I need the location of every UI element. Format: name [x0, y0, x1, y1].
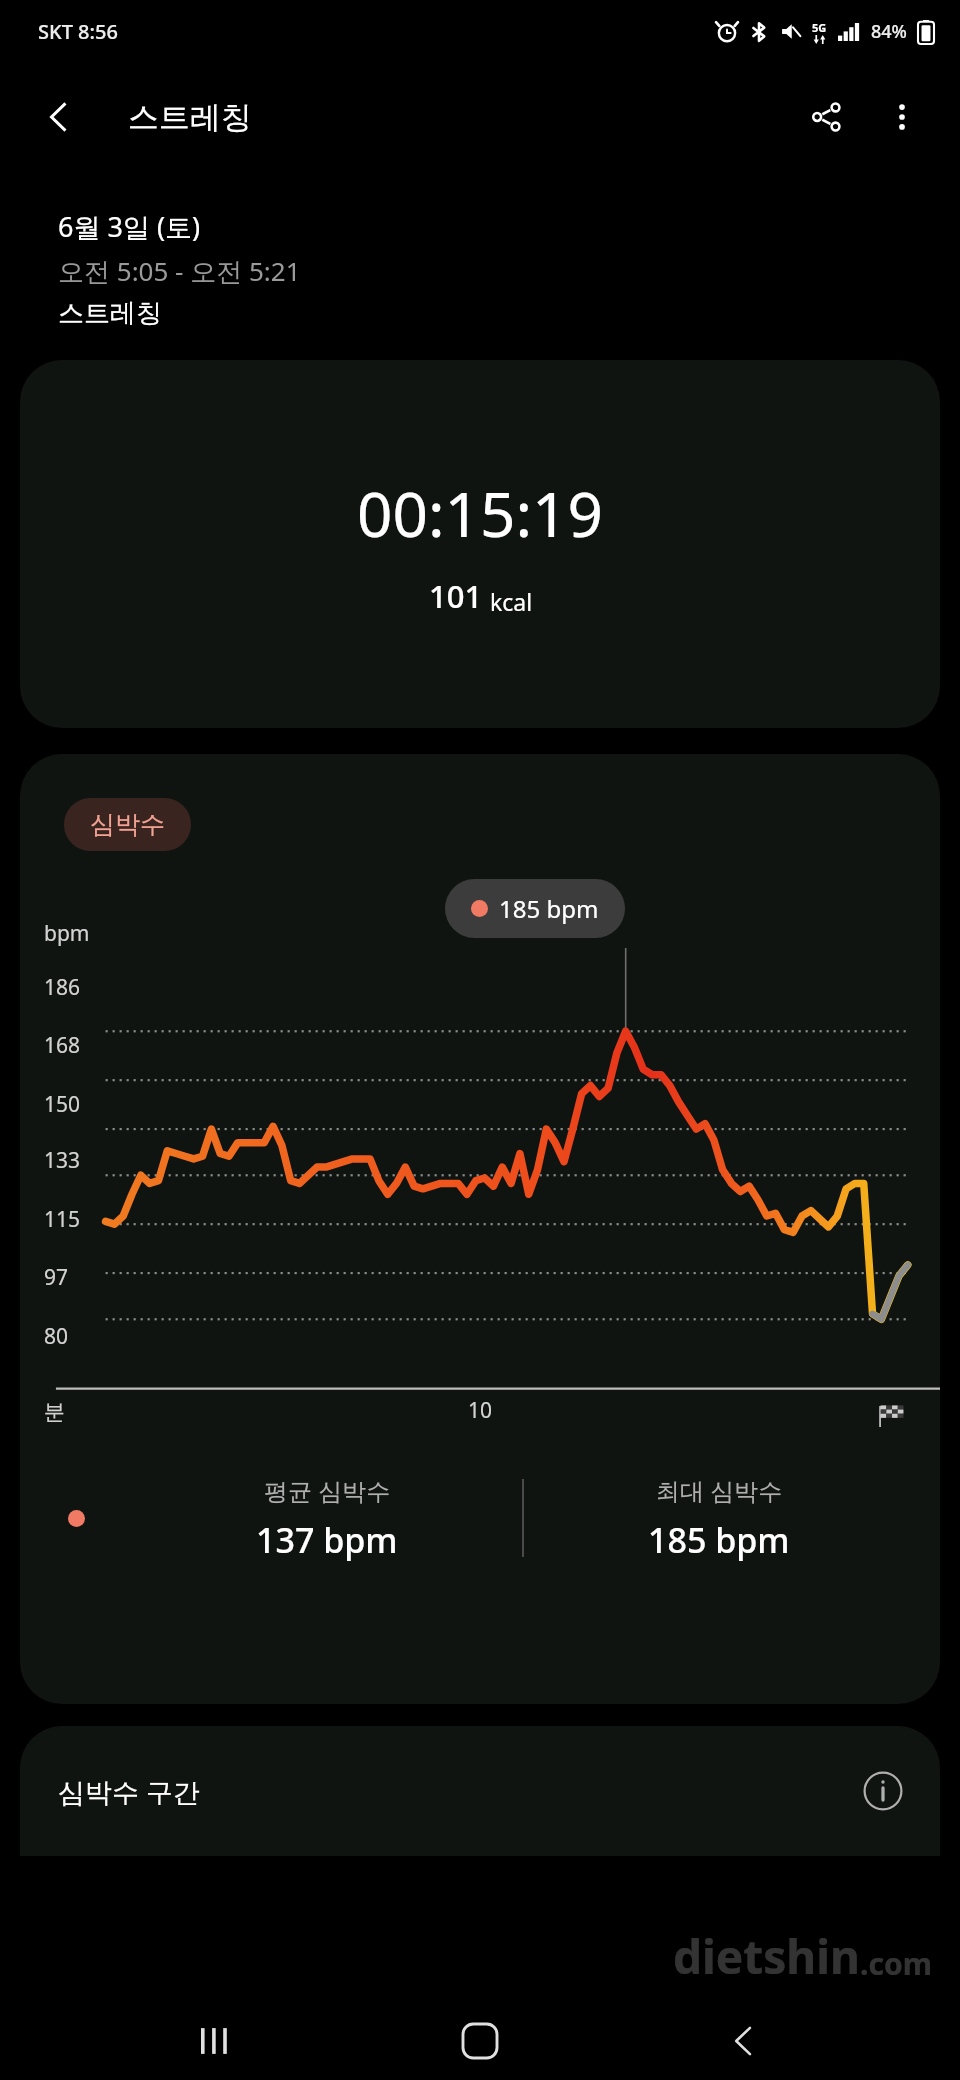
- button[interactable]: Home: [432, 2002, 528, 2080]
- staticText: 심박수 구간: [58, 1773, 201, 1810]
- staticText: .com: [860, 1943, 932, 1984]
- staticText: 00:15:19: [357, 471, 604, 555]
- staticText: 101: [429, 575, 483, 617]
- button[interactable]: Share: [788, 79, 864, 155]
- button[interactable]: Recents: [168, 2002, 264, 2080]
- button[interactable]: Back: [696, 2002, 792, 2080]
- staticText: 84%: [871, 19, 907, 44]
- staticText: 분: [44, 1399, 65, 1425]
- staticText: 스트레칭: [128, 98, 252, 137]
- staticText: 185 bpm: [499, 892, 599, 925]
- staticText: SKT 8:56: [38, 18, 118, 45]
- button[interactable]: Back: [24, 82, 94, 152]
- staticText: 스트레칭: [58, 297, 162, 330]
- staticText: 5G: [812, 20, 827, 35]
- staticText: bpm: [44, 919, 90, 948]
- staticText: 최대 심박수: [656, 1474, 783, 1507]
- staticText: 80: [44, 1322, 69, 1351]
- button[interactable]: 00:15:19: [20, 360, 940, 728]
- staticText: 133: [44, 1146, 81, 1175]
- button[interactable]: 심박수: [90, 809, 165, 840]
- staticText: 137 bpm: [256, 1517, 398, 1563]
- staticText: 186: [44, 973, 81, 1002]
- staticText: 심박수: [90, 809, 165, 840]
- button[interactable]: More options: [864, 79, 940, 155]
- staticText: 150: [44, 1090, 81, 1119]
- button[interactable]: 심박수 구간: [20, 1726, 940, 1856]
- staticText: 115: [44, 1205, 81, 1234]
- button[interactable]: Info: [856, 1764, 910, 1818]
- button[interactable]: 평균 심박수: [132, 1474, 522, 1563]
- staticText: kcal: [490, 586, 533, 617]
- staticText: 185 bpm: [648, 1517, 790, 1563]
- button[interactable]: 최대 심박수: [524, 1474, 914, 1563]
- staticText: 6월 3일 (토): [58, 208, 201, 245]
- staticText: 97: [44, 1263, 69, 1292]
- staticText: dietshin: [673, 1925, 860, 1988]
- staticText: 168: [44, 1031, 81, 1060]
- staticText: 평균 심박수: [264, 1474, 391, 1507]
- staticText: 10: [468, 1396, 493, 1425]
- staticText: 오전 5:05 - 오전 5:21: [58, 253, 301, 289]
